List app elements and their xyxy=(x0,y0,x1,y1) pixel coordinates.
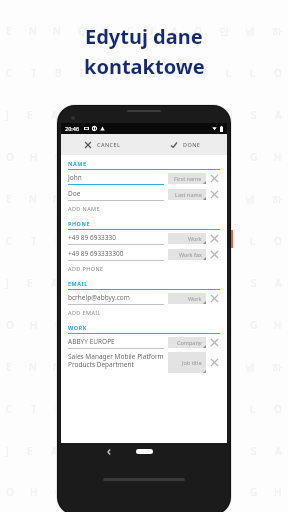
button[interactable]: Clear Work xyxy=(209,293,220,304)
staticText: B xyxy=(55,66,62,80)
button[interactable]: DONE xyxy=(144,134,227,155)
staticText: 하 xyxy=(272,361,282,374)
staticText: L xyxy=(250,402,256,416)
staticText: N xyxy=(53,360,61,374)
staticText: N xyxy=(53,192,61,206)
staticText: A xyxy=(275,108,282,122)
staticText: J xyxy=(6,276,9,290)
staticText: N xyxy=(225,150,233,164)
staticText: V xyxy=(151,66,158,80)
button[interactable]: Doe xyxy=(68,186,220,202)
staticText: A xyxy=(75,276,82,290)
button[interactable]: CANCEL xyxy=(61,134,144,155)
staticText: ADD NAME xyxy=(68,205,100,212)
staticText: WORK xyxy=(68,324,87,331)
button[interactable]: Clear Work fax xyxy=(209,249,220,260)
staticText: Edytuj dane xyxy=(85,23,203,50)
staticText: 안 xyxy=(219,361,229,374)
staticText: E xyxy=(27,108,33,122)
staticText: N xyxy=(29,24,37,38)
button[interactable]: Back xyxy=(104,447,114,457)
staticText: T xyxy=(31,234,37,248)
button[interactable]: Sales Manager Mobile Platform Products D… xyxy=(68,350,220,374)
staticText: N xyxy=(225,108,233,122)
staticText: O xyxy=(274,402,282,416)
button[interactable]: ABBYY EUROPE xyxy=(68,334,220,350)
staticText: A xyxy=(101,150,108,164)
button[interactable]: John xyxy=(68,170,220,186)
staticText: bcrhelp@abbyy.com xyxy=(68,293,130,302)
button[interactable]: Clear Company xyxy=(209,337,220,348)
staticText: L xyxy=(226,66,232,80)
staticText: Q xyxy=(102,24,110,38)
staticText: ADD PHONE xyxy=(68,265,104,272)
staticText: C xyxy=(127,192,134,206)
button[interactable]: Clear First name xyxy=(209,173,220,184)
staticText: O xyxy=(55,485,63,499)
staticText: O xyxy=(6,150,14,164)
staticText: ABBYY EUROPE xyxy=(68,337,115,346)
staticText: N xyxy=(126,108,134,122)
button[interactable]: +49 89 6933330 xyxy=(68,230,220,246)
button[interactable]: Clear Last name xyxy=(209,189,220,200)
staticText: Q xyxy=(78,360,86,374)
button[interactable]: ADD PHONE xyxy=(68,262,220,275)
staticText: T xyxy=(31,66,37,80)
staticText: N xyxy=(200,66,208,80)
staticText: C xyxy=(127,360,134,374)
staticText: S xyxy=(251,444,257,458)
staticText: Q xyxy=(78,24,86,38)
staticText: J xyxy=(6,108,9,122)
staticText: B xyxy=(55,402,62,416)
staticText: Q xyxy=(194,192,202,206)
staticText: 好 xyxy=(151,151,161,164)
staticText: L xyxy=(250,66,256,80)
staticText: 녕 xyxy=(245,193,255,206)
staticText: PHONE xyxy=(68,220,91,227)
button[interactable]: Clear Work xyxy=(209,233,220,244)
button[interactable]: ADD EMAIL xyxy=(68,306,220,319)
staticText: ADD EMAIL xyxy=(68,309,101,316)
staticText: Y xyxy=(152,108,158,122)
staticText: Work fax xyxy=(179,251,202,258)
staticText: John xyxy=(68,173,82,182)
staticText: E xyxy=(176,234,182,248)
staticText: Job title xyxy=(182,359,202,366)
button[interactable]: ADD NAME xyxy=(68,202,220,215)
staticText: H xyxy=(30,318,38,332)
staticText: H xyxy=(274,318,282,332)
staticText: N xyxy=(126,276,134,290)
staticText: 하 xyxy=(272,25,282,38)
staticText: H xyxy=(274,150,282,164)
staticText: E xyxy=(102,66,108,80)
staticText: 녕 xyxy=(245,361,255,374)
staticText: 20:46 xyxy=(65,125,80,132)
staticText: E xyxy=(176,276,182,290)
staticText: NAME xyxy=(68,160,87,167)
button[interactable]: bcrhelp@abbyy.com xyxy=(68,290,220,306)
button[interactable]: Home xyxy=(136,449,153,454)
staticText: O xyxy=(201,150,209,164)
button[interactable]: Clear Job title xyxy=(209,357,220,368)
staticText: G xyxy=(250,150,258,164)
staticText: B xyxy=(55,234,62,248)
staticText: A xyxy=(171,24,178,38)
staticText: Sales Manager Mobile Platform Products D… xyxy=(68,352,164,369)
staticText: A xyxy=(275,444,282,458)
staticText: N xyxy=(100,276,108,290)
staticText: S xyxy=(251,276,257,290)
staticText: H xyxy=(30,150,38,164)
staticText: E xyxy=(6,192,12,206)
staticText: N xyxy=(126,234,134,248)
button[interactable]: +49 89 693333300 xyxy=(68,246,220,262)
staticText: L xyxy=(226,402,232,416)
staticText: A xyxy=(171,360,178,374)
